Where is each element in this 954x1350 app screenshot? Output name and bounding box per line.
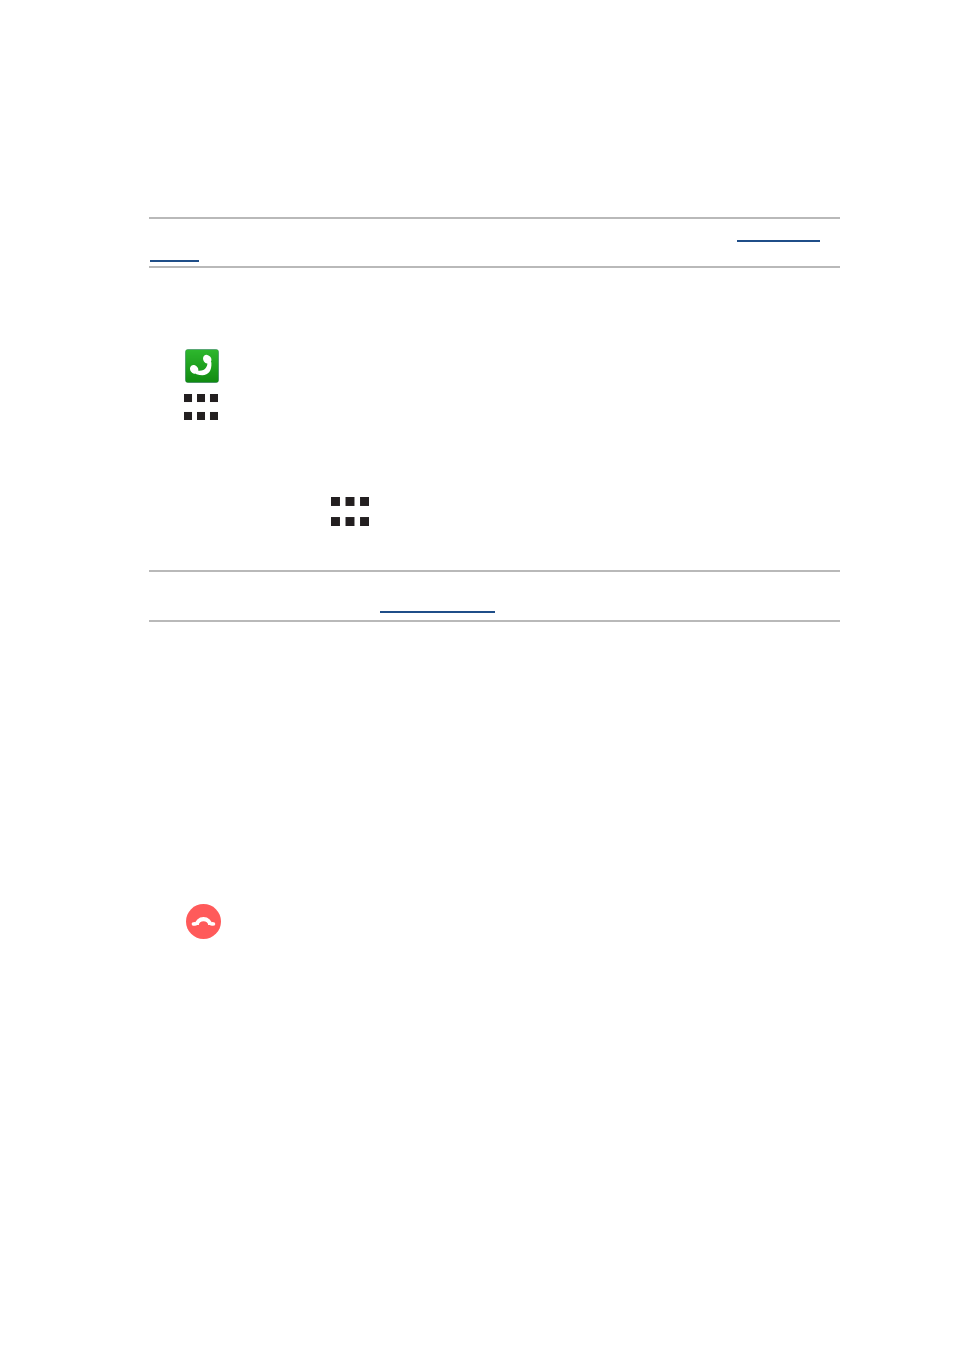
button[interactable]: Phone [185,349,219,383]
button[interactable]: All apps [331,497,369,526]
button[interactable]: All apps [184,394,218,420]
button[interactable]: End call [186,904,221,939]
